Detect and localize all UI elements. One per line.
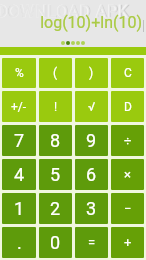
staticText: − bbox=[124, 201, 132, 216]
button[interactable]: 1 bbox=[2, 193, 36, 224]
staticText: +/- bbox=[11, 100, 27, 114]
button[interactable]: C bbox=[111, 58, 144, 88]
staticText: × bbox=[124, 167, 131, 182]
staticText: + bbox=[124, 235, 132, 250]
button[interactable]: . bbox=[2, 227, 36, 258]
button[interactable]: 2 bbox=[39, 193, 72, 224]
staticText: 7 bbox=[14, 130, 25, 151]
button[interactable]: × bbox=[111, 159, 144, 190]
staticText: √ bbox=[88, 100, 96, 114]
button[interactable]: ! bbox=[39, 91, 72, 122]
button[interactable]: + bbox=[111, 227, 144, 258]
staticText: C bbox=[124, 66, 132, 80]
button[interactable]: 9 bbox=[75, 125, 108, 156]
staticText: ( bbox=[53, 66, 58, 80]
button[interactable]: − bbox=[111, 193, 144, 224]
staticText: log(10)+ln(10) bbox=[40, 13, 142, 32]
button[interactable]: % bbox=[2, 58, 36, 88]
button[interactable]: ÷ bbox=[111, 125, 144, 156]
staticText: ! bbox=[54, 100, 58, 114]
staticText: ÷ bbox=[124, 133, 132, 148]
button[interactable]: +/- bbox=[2, 91, 36, 122]
staticText: % bbox=[15, 66, 24, 80]
staticText: 3 bbox=[86, 198, 97, 219]
staticText: 2 bbox=[50, 198, 61, 219]
button[interactable]: 8 bbox=[39, 125, 72, 156]
button[interactable]: 0 bbox=[39, 227, 72, 258]
staticText: 6 bbox=[86, 164, 97, 185]
staticText: DOWNLOAD APK bbox=[0, 1, 130, 21]
button[interactable]: 4 bbox=[2, 159, 36, 190]
button[interactable]: ) bbox=[75, 58, 108, 88]
button[interactable]: 3 bbox=[75, 193, 108, 224]
button[interactable]: 6 bbox=[75, 159, 108, 190]
button[interactable]: 5 bbox=[39, 159, 72, 190]
staticText: 8 bbox=[50, 130, 61, 151]
button[interactable]: √ bbox=[75, 91, 108, 122]
staticText: D bbox=[124, 100, 132, 114]
staticText: 9 bbox=[86, 130, 97, 151]
staticText: DOWNLOAD APK bbox=[0, 2, 129, 21]
staticText: . bbox=[17, 232, 22, 253]
button[interactable]: ( bbox=[39, 58, 72, 88]
button[interactable]: D bbox=[111, 91, 144, 122]
button[interactable]: = bbox=[75, 227, 108, 258]
staticText: 4 bbox=[14, 164, 25, 185]
staticText: 1 bbox=[14, 198, 25, 219]
staticText: 0 bbox=[50, 232, 61, 253]
staticText: = bbox=[88, 235, 96, 250]
staticText: ) bbox=[89, 66, 94, 80]
button[interactable]: 7 bbox=[2, 125, 36, 156]
staticText: 5 bbox=[50, 164, 61, 185]
